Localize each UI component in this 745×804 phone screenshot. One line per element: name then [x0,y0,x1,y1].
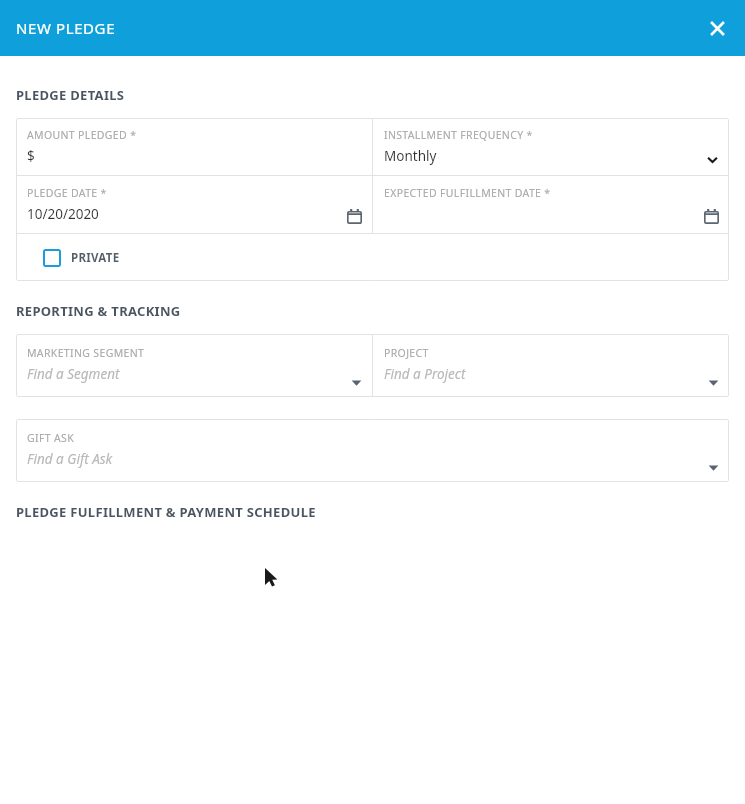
staticText: NEW PLEDGE [16,18,116,38]
staticText: PROJECT [384,346,429,360]
staticText: Monthly [384,147,437,165]
staticText: PLEDGE DETAILS [16,86,125,104]
staticText: Find a Segment [27,365,120,383]
button[interactable]: GIFT ASK [16,419,729,482]
staticText: MARKETING SEGMENT [27,346,145,360]
button[interactable]: INSTALLMENT FREQUENCY * [373,118,729,175]
button[interactable]: PRIVATE [16,234,729,281]
staticText: Find a Project [384,365,466,383]
staticText: PRIVATE [71,250,120,266]
staticText: REPORTING & TRACKING [16,302,181,320]
button[interactable]: PLEDGE DATE * [16,176,372,233]
staticText: EXPECTED FULFILLMENT DATE * [384,186,551,200]
staticText: PLEDGE FULFILLMENT & PAYMENT SCHEDULE [16,503,316,521]
staticText: INSTALLMENT FREQUENCY * [384,128,533,142]
staticText: $ [27,147,35,165]
staticText: GIFT ASK [27,431,74,445]
staticText: Find a Gift Ask [27,450,113,468]
button[interactable]: MARKETING SEGMENT [16,334,372,397]
staticText: PLEDGE DATE * [27,186,107,200]
button[interactable]: EXPECTED FULFILLMENT DATE * [373,176,729,233]
button[interactable]: AMOUNT PLEDGED * [16,118,372,175]
button[interactable]: PROJECT [373,334,729,397]
button[interactable]: Close [697,8,737,48]
staticText: 10/20/2020 [27,205,99,223]
staticText: AMOUNT PLEDGED * [27,128,137,142]
